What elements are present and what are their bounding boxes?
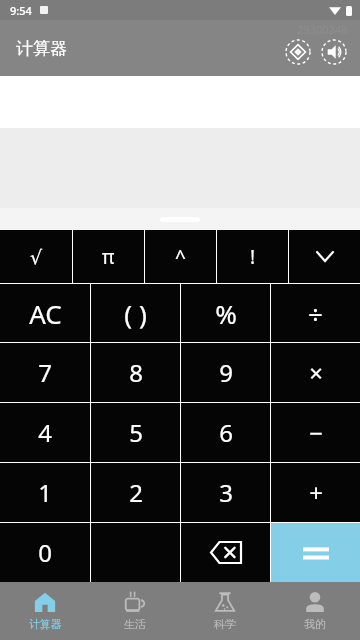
button[interactable]: ( ) — [91, 284, 180, 342]
staticText: 我的 — [304, 617, 326, 631]
button[interactable]: Theme — [280, 34, 316, 70]
button[interactable]: 4 — [0, 403, 90, 462]
button[interactable]: Sound — [316, 34, 352, 70]
button[interactable]: 5 — [91, 403, 180, 462]
button[interactable]: ÷ — [271, 284, 360, 342]
button[interactable]: √ — [0, 230, 72, 283]
staticText: 生活 — [124, 617, 146, 631]
staticText: 0 — [38, 536, 52, 569]
button[interactable]: 3 — [181, 463, 270, 522]
staticText: 9 — [219, 356, 233, 389]
staticText: ^ — [175, 244, 186, 270]
staticText: π — [102, 244, 115, 270]
staticText: 7 — [38, 356, 52, 389]
staticText: 1 — [38, 476, 52, 509]
staticText: % — [215, 296, 237, 331]
staticText: √ — [30, 246, 43, 268]
button[interactable]: More functions — [289, 230, 360, 283]
staticText: 4 — [38, 416, 52, 449]
staticText: 3 — [219, 476, 233, 509]
staticText: 8 — [129, 356, 143, 389]
button[interactable]: 生活 — [90, 582, 180, 640]
button[interactable]: AC — [0, 284, 90, 342]
button[interactable]: % — [181, 284, 270, 342]
staticText: AC — [29, 296, 62, 331]
button[interactable]: 2 — [91, 463, 180, 522]
button[interactable]: ^ — [145, 230, 216, 283]
staticText: 6 — [219, 416, 233, 449]
button[interactable]: ! — [217, 230, 288, 283]
staticText: 科学 — [214, 617, 236, 631]
button[interactable]: 9 — [181, 343, 270, 402]
button[interactable]: 8 — [91, 343, 180, 402]
staticText: 计算器 — [16, 38, 67, 59]
button[interactable]: Backspace — [181, 523, 270, 582]
button[interactable]: 6 — [181, 403, 270, 462]
staticText: 2 — [129, 476, 143, 509]
button[interactable]: × — [271, 343, 360, 402]
staticText: ( ) — [124, 296, 147, 331]
button[interactable]: 计算器 — [0, 582, 90, 640]
button[interactable]: 7 — [0, 343, 90, 402]
staticText: ! — [250, 244, 256, 270]
button[interactable]: − — [271, 403, 360, 462]
staticText: 计算器 — [29, 617, 62, 631]
staticText: ÷ — [308, 296, 323, 331]
staticText: − — [309, 416, 323, 449]
button[interactable]: 科学 — [180, 582, 270, 640]
button[interactable]: 1 — [0, 463, 90, 522]
button[interactable]: 我的 — [270, 582, 360, 640]
staticText: × — [309, 356, 323, 389]
button[interactable] — [271, 523, 360, 582]
staticText: 5 — [129, 416, 143, 449]
staticText: 9:54 — [10, 3, 32, 18]
button[interactable]: 0 — [0, 523, 90, 582]
button[interactable]: π — [73, 230, 144, 283]
button[interactable]: + — [271, 463, 360, 522]
staticText: + — [309, 476, 323, 509]
